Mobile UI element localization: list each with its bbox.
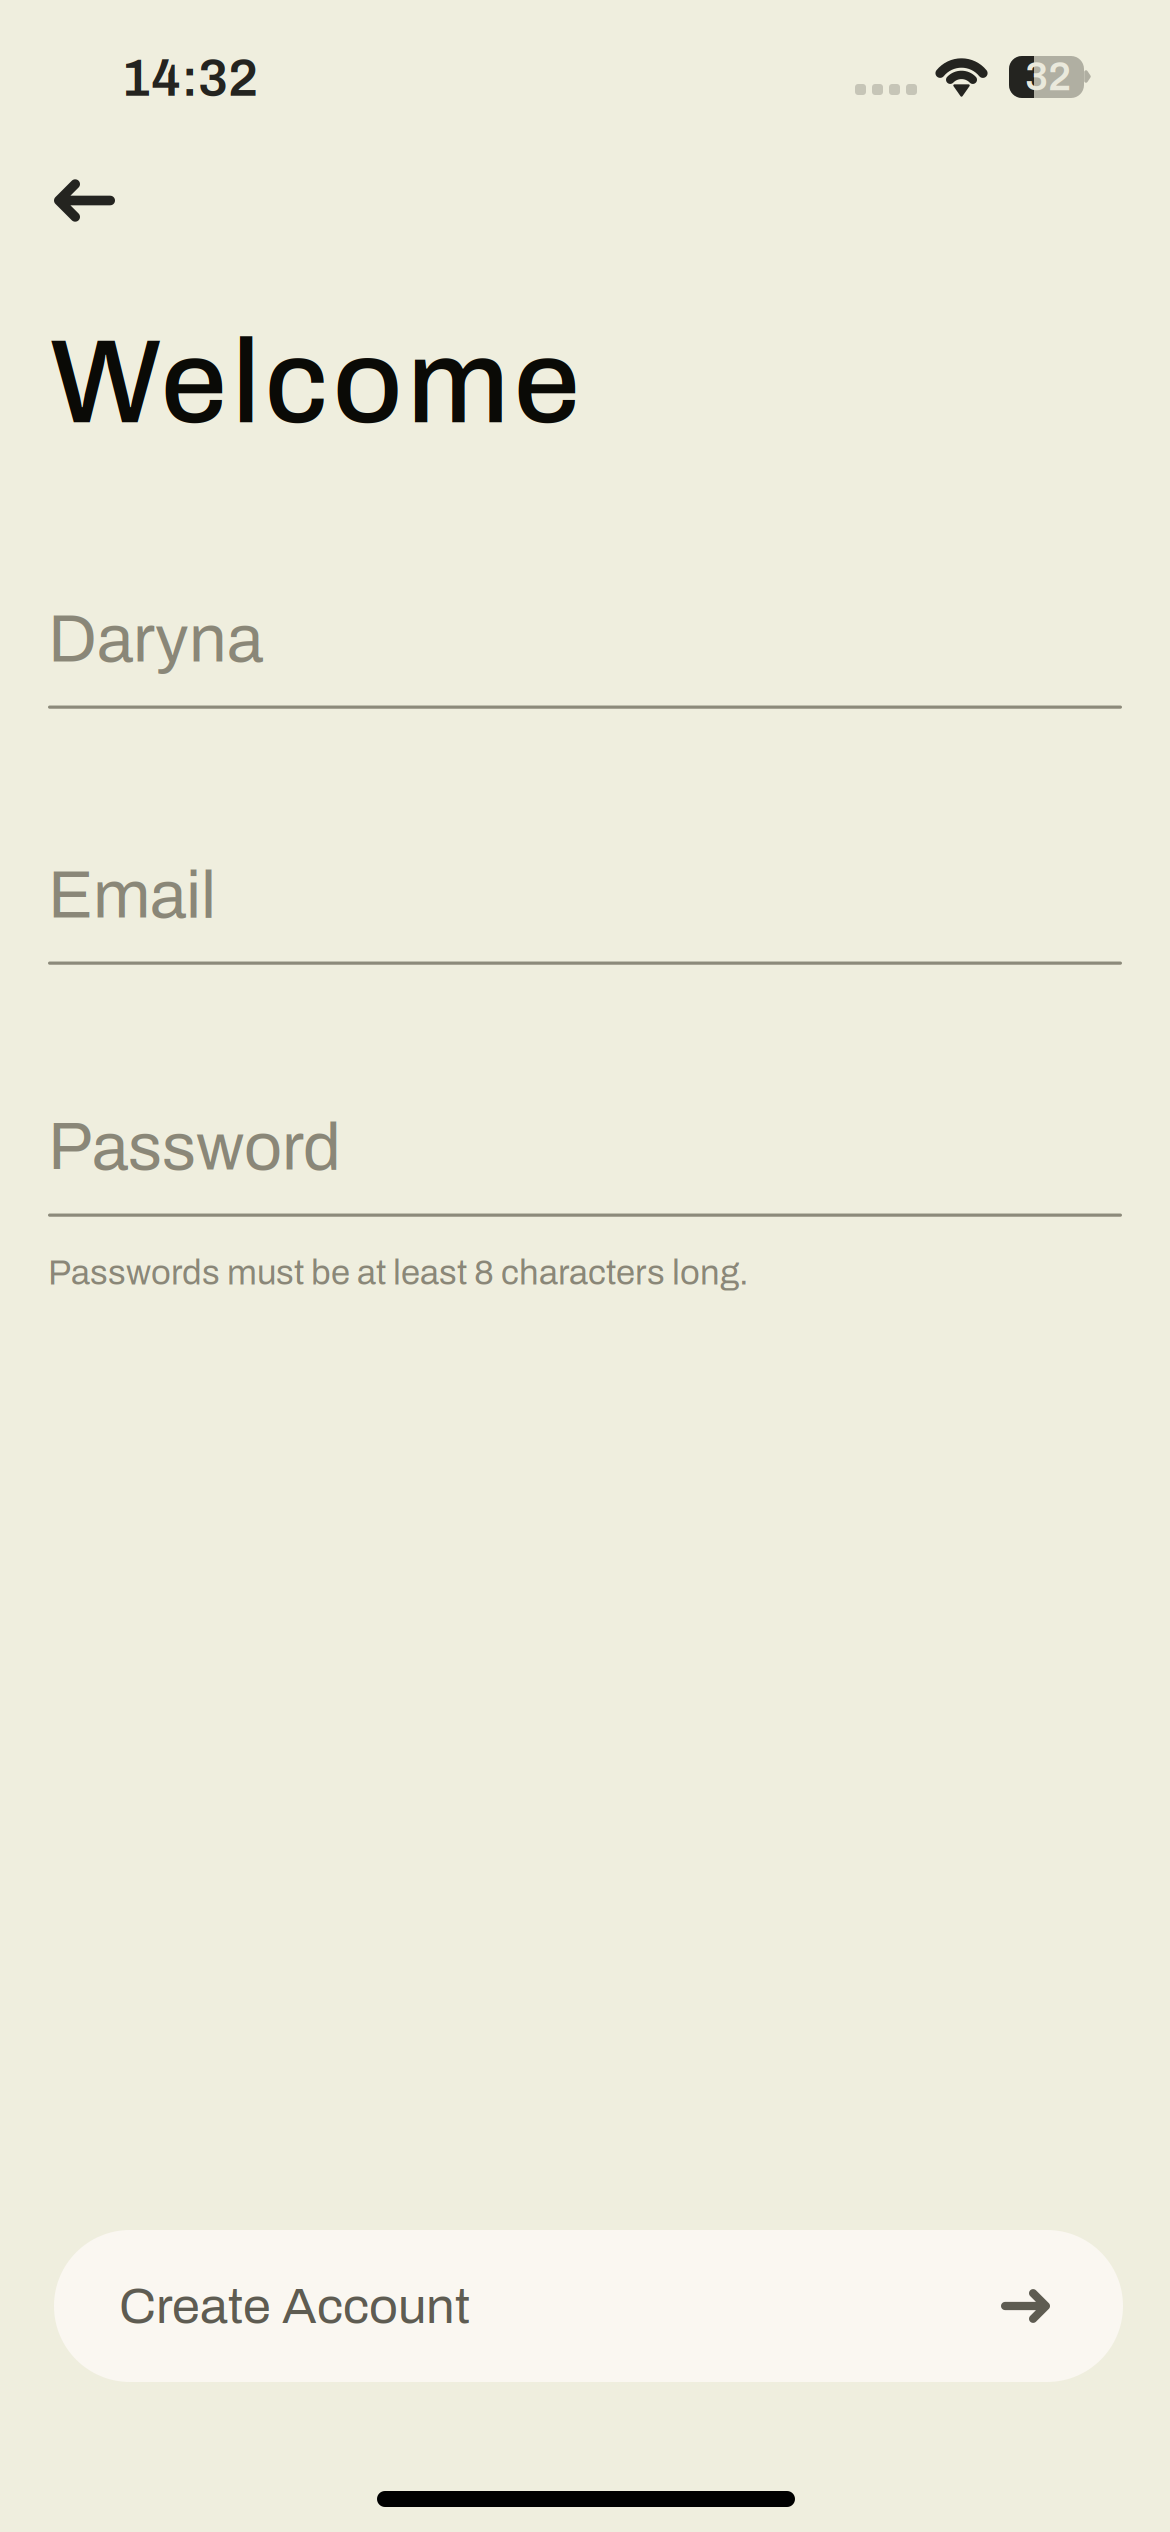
staticText: Create Account [119, 2278, 470, 2333]
staticText: Daryna [48, 603, 263, 675]
staticText: Passwords must be at least 8 characters … [48, 1254, 749, 1292]
button[interactable]: Back [24, 150, 145, 251]
staticText: 14:32 [121, 50, 258, 107]
staticText: Password [48, 1111, 341, 1183]
staticText: 32 [1025, 55, 1071, 99]
button[interactable]: Create Account [54, 2230, 1123, 2382]
staticText: Welcome [50, 318, 580, 447]
staticText: Email [48, 859, 216, 931]
